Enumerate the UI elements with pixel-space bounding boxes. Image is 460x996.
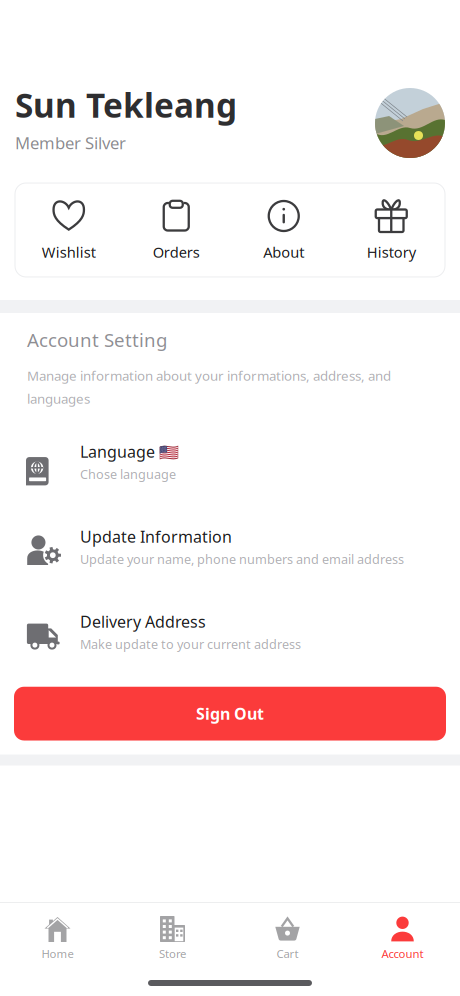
staticText: Account [381,946,423,961]
staticText: Delivery Address [80,611,206,632]
staticText: Manage information about your informatio… [27,366,391,408]
staticText: Wishlist [42,242,96,262]
button[interactable]: Home [0,916,115,961]
button[interactable]: Delivery Address [0,610,460,654]
staticText: Sun Tekleang [15,82,237,127]
button[interactable]: History [337,183,445,277]
staticText: Orders [153,242,200,262]
button[interactable]: Orders [122,183,230,277]
staticText: Member Silver [15,131,126,154]
button[interactable]: About [230,183,337,277]
staticText: Make update to your current address [80,635,301,653]
staticText: Update Information [80,526,232,547]
button[interactable]: Update Information [0,525,460,569]
button[interactable]: Sign Out [14,687,446,740]
button[interactable]: Language 🇺🇸 [0,440,460,484]
staticText: Store [159,946,186,961]
staticText: History [367,242,416,262]
button[interactable]: Store [115,916,230,961]
button[interactable]: Cart [230,916,345,961]
staticText: Cart [276,946,298,961]
staticText: Home [41,946,73,961]
staticText: Language 🇺🇸 [80,441,179,462]
staticText: Account Setting [27,327,167,352]
staticText: Update your name, phone numbers and emai… [80,550,404,568]
staticText: Sign Out [196,703,264,724]
button[interactable]: Wishlist [15,183,122,277]
staticText: About [263,242,304,262]
staticText: Chose language [80,465,176,483]
button[interactable]: Account [345,916,460,961]
